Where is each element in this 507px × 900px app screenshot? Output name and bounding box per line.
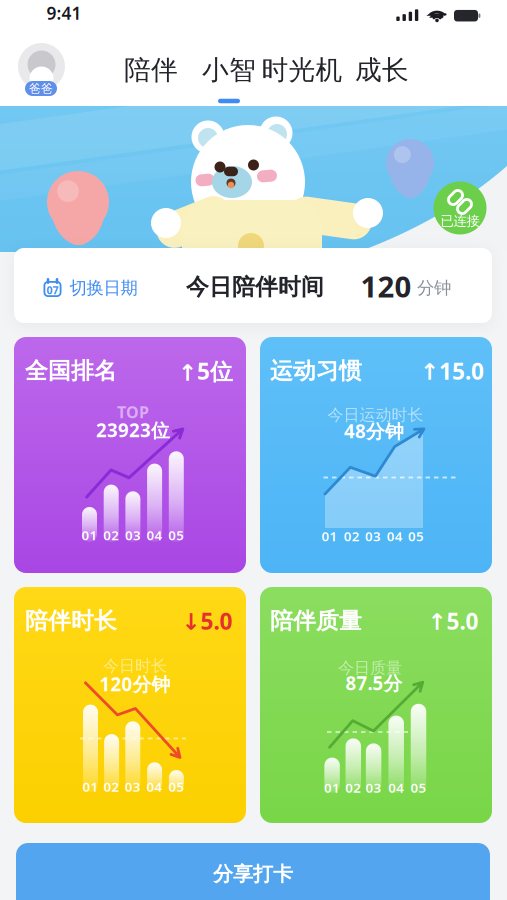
staticText: 05 xyxy=(168,526,184,544)
staticText: ↓5.0 xyxy=(181,606,232,636)
button[interactable]: 分享打卡 xyxy=(16,843,490,900)
staticText: 03 xyxy=(365,527,381,545)
staticText: 04 xyxy=(387,527,403,545)
button[interactable]: 陪伴 xyxy=(124,50,178,90)
staticText: 分钟 xyxy=(417,277,451,299)
staticText: 陪伴 xyxy=(124,54,178,86)
staticText: 04 xyxy=(147,778,163,795)
staticText: 02 xyxy=(345,779,361,796)
staticText: 小智 xyxy=(202,54,256,86)
staticText: 今日运动时长 xyxy=(327,405,423,425)
staticText: TOP xyxy=(117,401,149,423)
staticText: 04 xyxy=(388,779,404,796)
staticText: 120分钟 xyxy=(99,672,170,696)
staticText: 48分钟 xyxy=(344,419,404,443)
button[interactable]: 已连接 xyxy=(433,181,487,235)
staticText: 03 xyxy=(366,779,382,796)
staticText: ↑5.0 xyxy=(427,606,478,636)
staticText: 03 xyxy=(125,526,141,544)
staticText: 04 xyxy=(147,526,163,544)
staticText: 01 xyxy=(81,526,97,544)
button[interactable]: 小智 xyxy=(202,50,256,90)
staticText: 分享打卡 xyxy=(213,862,293,886)
staticText: 01 xyxy=(322,527,338,545)
staticText: 23923位 xyxy=(96,418,170,442)
staticText: 07 xyxy=(46,283,58,297)
staticText: 05 xyxy=(408,527,424,545)
staticText: 陪伴时长 xyxy=(25,607,117,635)
button[interactable]: 成长 xyxy=(355,50,409,90)
staticText: 时光机 xyxy=(261,54,342,86)
staticText: 87.5分 xyxy=(345,671,402,695)
staticText: 02 xyxy=(344,527,360,545)
staticText: ↑5位 xyxy=(178,356,233,386)
staticText: 02 xyxy=(104,778,120,795)
staticText: 切换日期 xyxy=(69,277,137,299)
staticText: ↑15.0 xyxy=(420,356,484,386)
staticText: 02 xyxy=(103,526,119,544)
staticText: 今日陪伴时间 xyxy=(186,273,324,301)
staticText: 9:41 xyxy=(46,1,81,24)
staticText: 已连接 xyxy=(440,213,479,229)
staticText: 成长 xyxy=(355,54,409,86)
staticText: 今日时长 xyxy=(103,656,167,676)
staticText: 05 xyxy=(410,779,426,796)
staticText: 爸爸 xyxy=(29,81,53,96)
staticText: 03 xyxy=(125,778,141,795)
staticText: 01 xyxy=(82,778,98,795)
staticText: 01 xyxy=(324,779,340,796)
staticText: 陪伴质量 xyxy=(270,607,362,635)
staticText: 运动习惯 xyxy=(270,357,362,385)
staticText: 全国排名 xyxy=(25,357,117,385)
staticText: 今日质量 xyxy=(338,658,402,678)
staticText: 05 xyxy=(168,778,184,795)
button[interactable]: 07 xyxy=(42,268,137,308)
button[interactable]: 时光机 xyxy=(261,50,342,90)
button[interactable]: 爸爸 个人主页 xyxy=(18,43,65,99)
staticText: 120 xyxy=(360,266,411,305)
